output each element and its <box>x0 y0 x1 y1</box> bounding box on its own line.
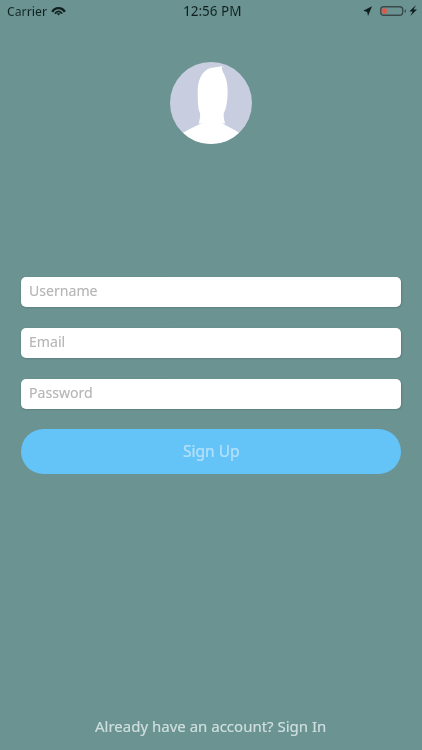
button[interactable]: Profile photo <box>170 62 252 144</box>
button[interactable]: Already have an account? Sign In <box>0 716 422 736</box>
button[interactable]: Username <box>21 277 401 307</box>
staticText: Username <box>29 281 98 300</box>
button[interactable]: Password <box>21 379 401 409</box>
button[interactable]: Sign Up <box>21 429 401 474</box>
staticText: 12:56 PM <box>183 2 242 20</box>
button[interactable]: Email <box>21 328 401 358</box>
staticText: Carrier <box>7 3 48 19</box>
staticText: Email <box>29 332 66 351</box>
staticText: Sign Up <box>183 440 240 461</box>
staticText: Already have an account? Sign In <box>95 716 327 736</box>
staticText: Password <box>29 383 93 402</box>
